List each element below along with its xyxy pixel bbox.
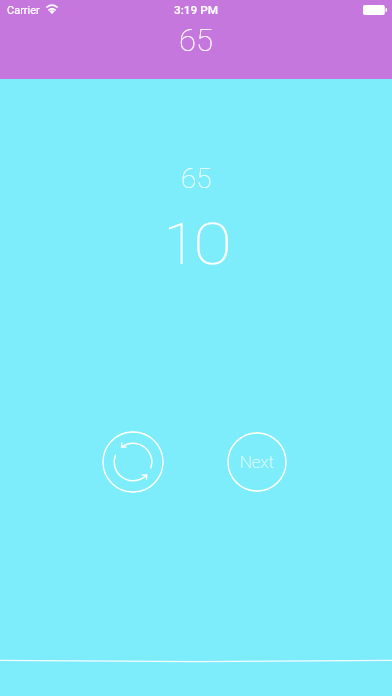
staticText: 0 xyxy=(193,211,233,278)
staticText: 65 xyxy=(179,22,213,58)
staticText: 3:19 PM xyxy=(174,3,219,17)
staticText: Next xyxy=(240,452,275,472)
staticText: Carrier xyxy=(7,4,40,17)
button[interactable]: Next xyxy=(227,432,287,492)
staticText: 65 xyxy=(181,162,212,195)
staticText: 1 xyxy=(164,211,196,278)
button[interactable]: Refresh xyxy=(102,431,164,493)
